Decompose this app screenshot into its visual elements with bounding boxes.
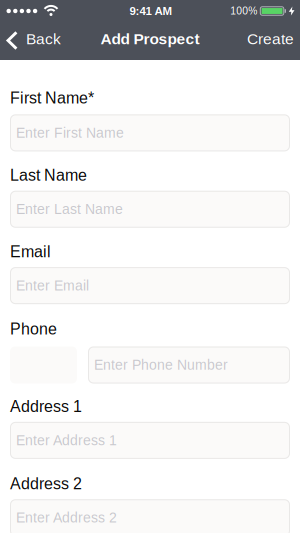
button[interactable]: Enter Address 1 <box>10 422 290 459</box>
staticText: Back <box>26 30 61 48</box>
staticText: Enter Email <box>16 278 89 293</box>
staticText: Enter Last Name <box>16 201 123 217</box>
button[interactable]: Enter Address 2 <box>10 499 290 533</box>
staticText: Email <box>10 243 51 261</box>
button[interactable]: Enter Last Name <box>10 191 290 228</box>
button[interactable]: Back <box>0 30 61 50</box>
staticText: Enter Address 2 <box>16 510 117 525</box>
button[interactable]: Enter First Name <box>10 114 290 151</box>
staticText: Address 1 <box>10 397 82 415</box>
button[interactable]: Enter Phone Number <box>88 346 290 383</box>
staticText: 100% <box>230 5 257 17</box>
button[interactable]: Enter Email <box>10 267 290 304</box>
staticText: Last Name <box>10 166 87 184</box>
button[interactable]: Create <box>247 31 300 49</box>
staticText: Address 2 <box>10 475 82 493</box>
staticText: 9:41 AM <box>129 5 172 17</box>
staticText: Enter Phone Number <box>94 357 228 373</box>
staticText: First Name* <box>10 89 94 107</box>
staticText: Add Prospect <box>100 30 199 48</box>
staticText: Create <box>247 30 294 48</box>
staticText: Enter First Name <box>16 125 124 141</box>
staticText: Enter Address 1 <box>16 433 117 448</box>
staticText: Phone <box>10 320 57 338</box>
